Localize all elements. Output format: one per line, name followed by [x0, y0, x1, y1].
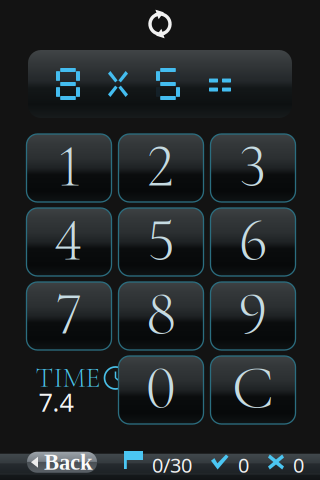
- staticText: 0: [238, 452, 249, 478]
- staticText: 7.4: [38, 385, 73, 419]
- button[interactable]: 2: [118, 134, 203, 202]
- staticText: 2: [147, 129, 175, 203]
- staticText: 3: [239, 129, 266, 203]
- button[interactable]: 1: [26, 134, 111, 202]
- staticText: 0: [145, 351, 176, 425]
- button[interactable]: New question: [145, 9, 175, 39]
- button[interactable]: C: [210, 356, 295, 424]
- staticText: 4: [54, 203, 83, 277]
- button[interactable]: 5: [118, 208, 203, 276]
- staticText: 9: [238, 277, 268, 351]
- staticText: TIME: [35, 361, 100, 395]
- staticText: 1: [57, 129, 81, 203]
- button[interactable]: 0: [118, 356, 203, 424]
- staticText: 0: [293, 452, 304, 478]
- staticText: 7: [56, 277, 82, 351]
- button[interactable]: Back: [27, 452, 97, 473]
- button[interactable]: 3: [210, 134, 295, 202]
- staticText: 8: [146, 277, 176, 351]
- button[interactable]: 8: [118, 282, 203, 350]
- staticText: Back: [44, 450, 93, 475]
- staticText: C: [232, 351, 274, 425]
- button[interactable]: 9: [210, 282, 295, 350]
- staticText: 6: [238, 203, 268, 277]
- button[interactable]: 6: [210, 208, 295, 276]
- button[interactable]: 4: [26, 208, 111, 276]
- button[interactable]: 7: [26, 282, 111, 350]
- staticText: 5: [147, 203, 174, 277]
- staticText: 0/30: [152, 452, 192, 478]
